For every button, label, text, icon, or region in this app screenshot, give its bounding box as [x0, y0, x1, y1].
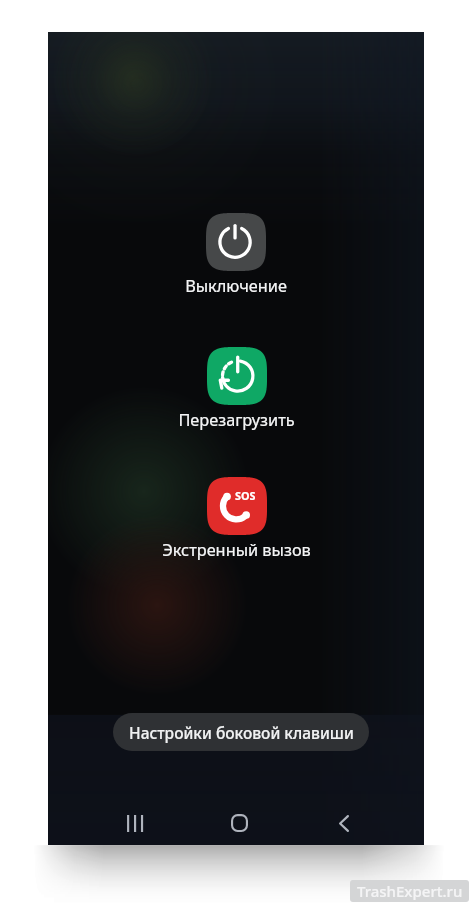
button[interactable]: Перезагрузить: [178, 347, 295, 431]
button[interactable]: Recent apps: [106, 801, 162, 845]
button[interactable]: Настройки боковой клавиши: [113, 713, 369, 751]
staticText: TrashExpert.ru: [357, 881, 463, 901]
button[interactable]: Home: [211, 801, 267, 845]
button[interactable]: Back: [316, 801, 372, 845]
button[interactable]: SOS: [162, 477, 311, 561]
staticText: Экстренный вызов: [162, 539, 311, 561]
staticText: SOS: [235, 488, 256, 503]
button[interactable]: Выключение: [185, 213, 287, 297]
staticText: Выключение: [185, 275, 287, 297]
staticText: Настройки боковой клавиши: [129, 722, 354, 743]
staticText: Перезагрузить: [178, 409, 295, 431]
